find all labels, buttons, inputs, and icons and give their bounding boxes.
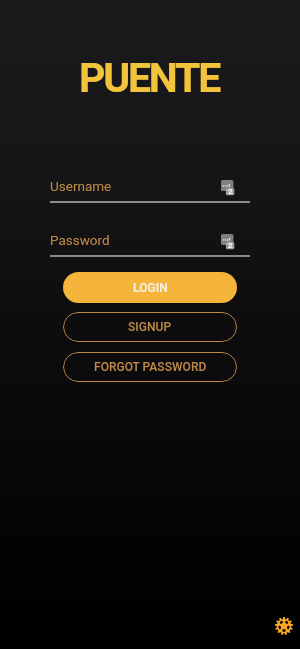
staticText: FORGOT PASSWORD bbox=[94, 360, 207, 374]
button[interactable]: LOGIN bbox=[63, 272, 237, 303]
staticText: Username bbox=[50, 178, 112, 194]
button[interactable]: Password bbox=[50, 232, 250, 258]
button[interactable]: Settings bbox=[274, 616, 294, 636]
staticText: LOGIN bbox=[133, 281, 168, 295]
staticText: PUENTE bbox=[0, 54, 299, 102]
staticText: 2 bbox=[228, 241, 233, 250]
button[interactable]: FORGOT PASSWORD bbox=[63, 352, 237, 382]
button[interactable]: Username bbox=[50, 178, 250, 204]
button[interactable]: SIGNUP bbox=[63, 312, 237, 342]
staticText: SIGNUP bbox=[128, 320, 172, 334]
staticText: 2 bbox=[228, 187, 233, 196]
staticText: Password bbox=[50, 232, 110, 248]
